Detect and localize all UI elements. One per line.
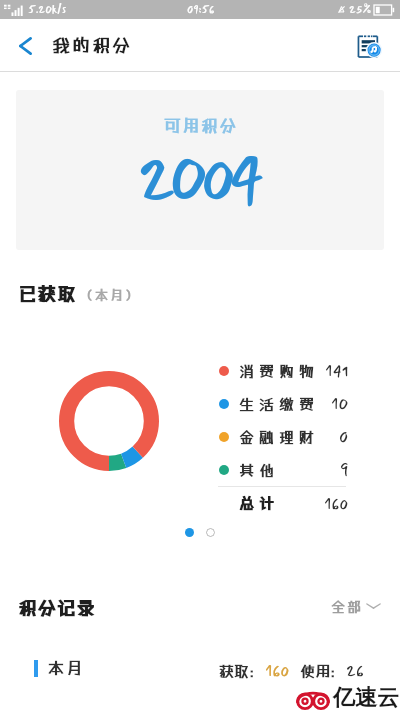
staticText: 5.20k/s	[28, 1, 67, 18]
staticText: 总计	[239, 494, 280, 512]
button[interactable]: Points rules	[349, 19, 389, 72]
staticText: 25%	[349, 1, 371, 18]
staticText: 获取：	[219, 662, 265, 680]
staticText: 积分记录	[18, 597, 96, 618]
button[interactable]: 全部	[331, 594, 381, 618]
staticText: 消费购物	[239, 362, 320, 380]
staticText: 可用积分	[163, 116, 237, 135]
staticText: 26	[346, 658, 364, 683]
staticText: 10	[331, 391, 349, 416]
button[interactable]: 本月	[16, 642, 384, 711]
staticText: 使用：	[300, 662, 346, 680]
staticText: 141	[325, 358, 349, 383]
staticText: 09:56	[187, 1, 215, 18]
staticText: 已获取	[18, 283, 77, 304]
button[interactable]: Back	[4, 19, 46, 72]
staticText: 全部	[331, 598, 363, 615]
staticText: 生活缴费	[239, 395, 320, 413]
staticText: 金融理财	[239, 428, 320, 446]
staticText: 2004	[137, 127, 258, 228]
button[interactable]: 可用积分	[16, 90, 384, 250]
staticText: 160	[265, 658, 290, 683]
staticText: （本月）	[80, 287, 141, 302]
staticText: 9	[340, 457, 349, 482]
staticText: 其他	[239, 461, 280, 479]
staticText: 0	[339, 424, 349, 449]
staticText: 我的积分	[52, 34, 132, 55]
staticText: 160	[324, 491, 349, 516]
staticText: 亿速云	[333, 684, 399, 711]
staticText: 本月	[48, 658, 85, 677]
